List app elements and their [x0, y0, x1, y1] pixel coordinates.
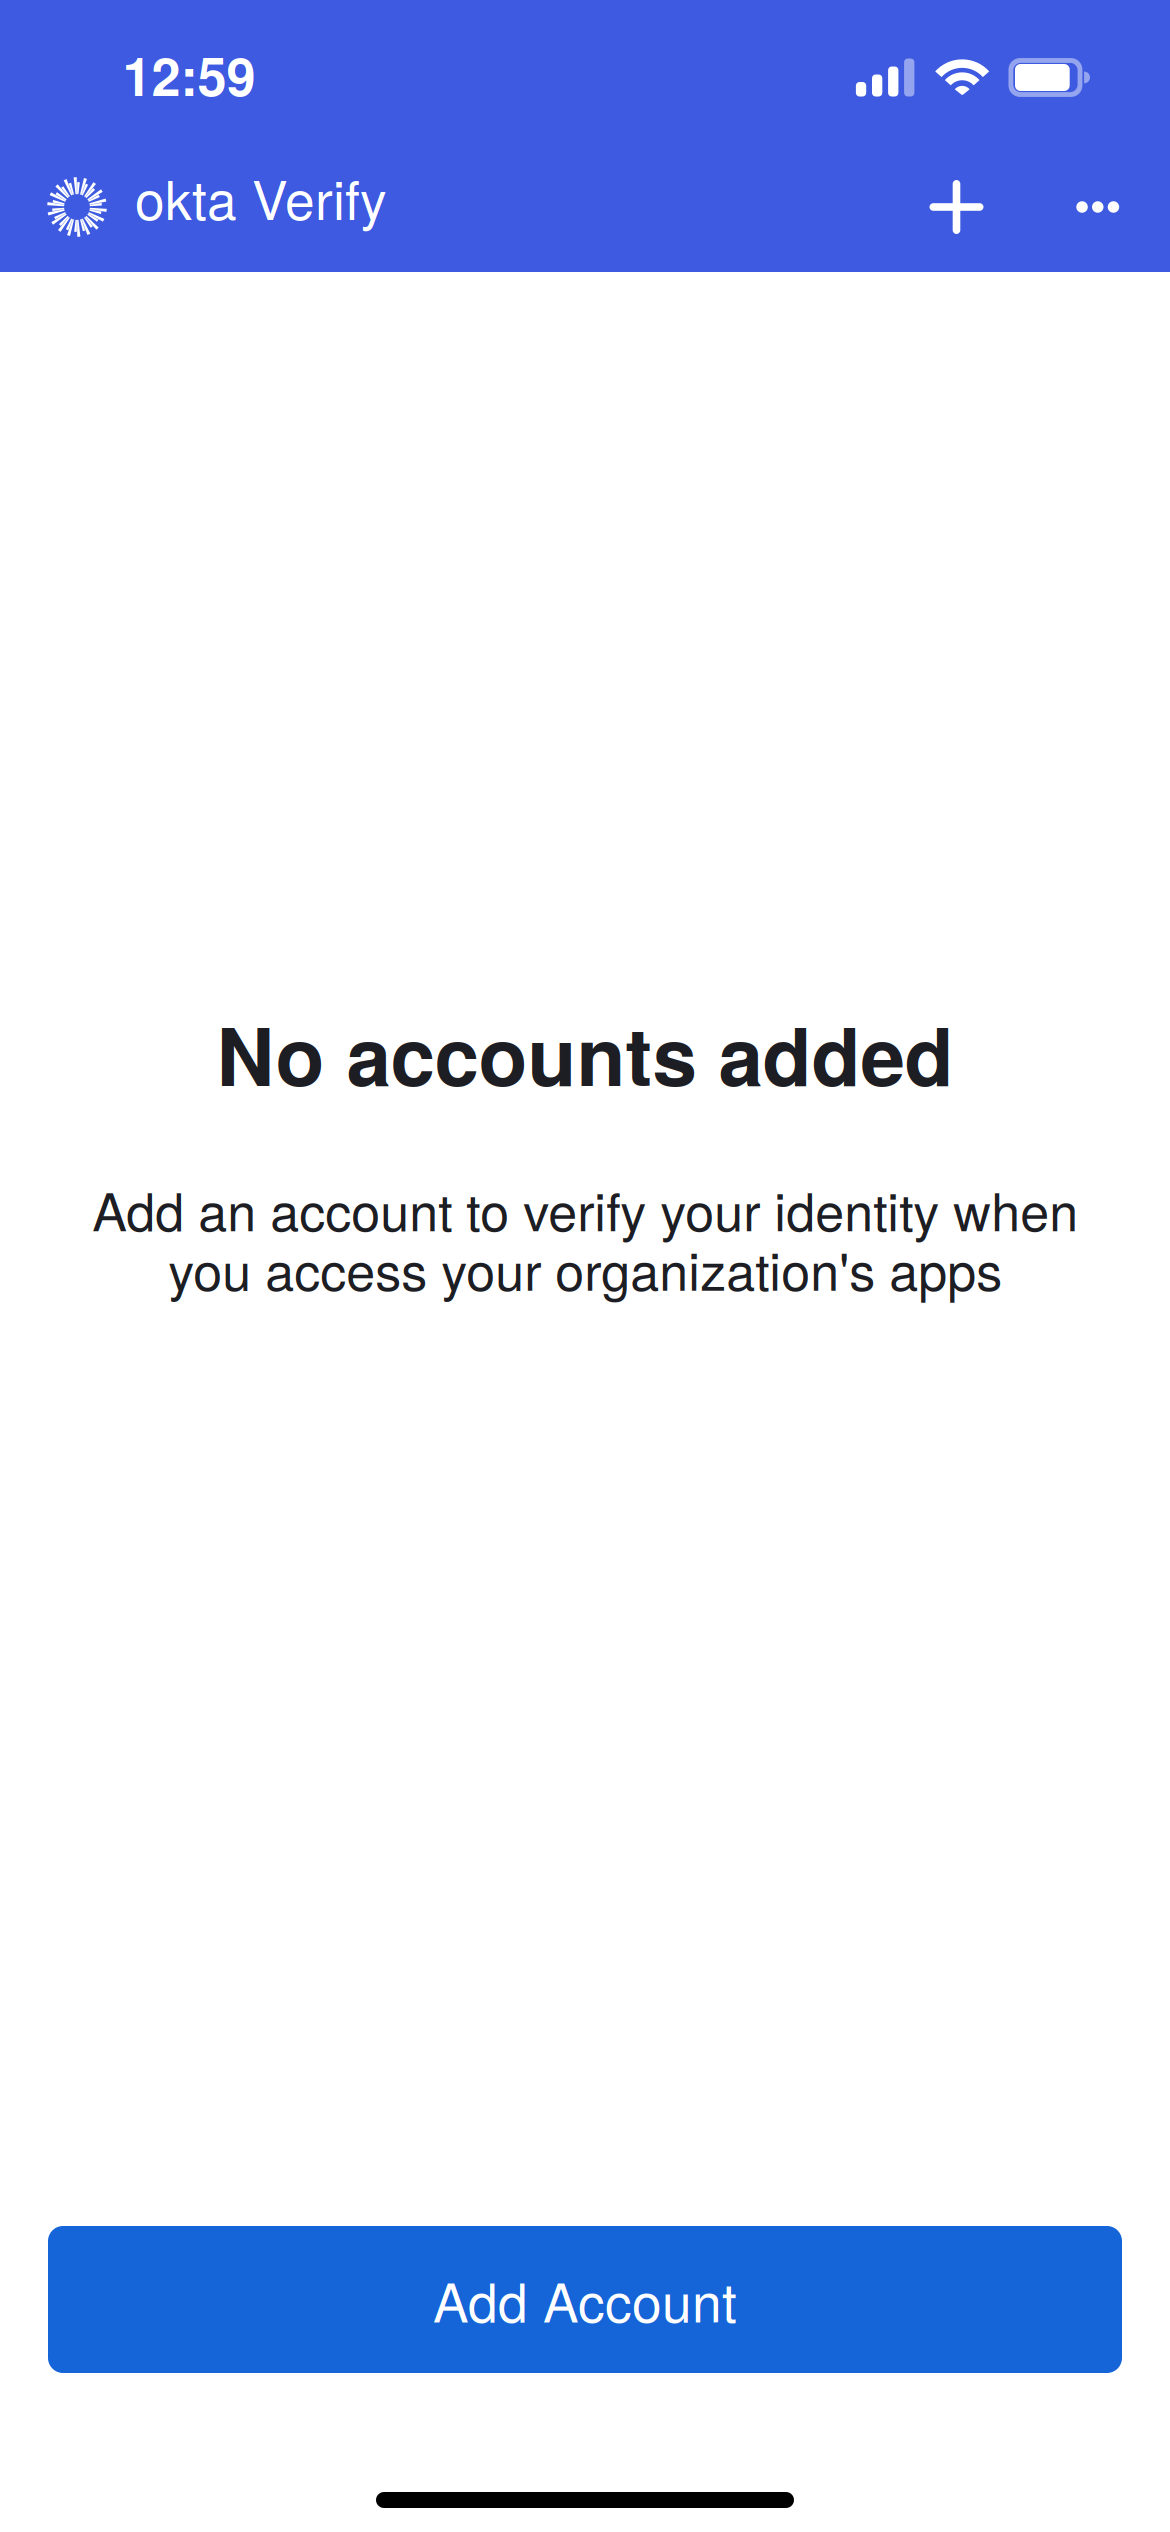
button[interactable]: More options	[1068, 172, 1127, 242]
button[interactable]: Add account	[921, 172, 991, 242]
staticText: Add Account	[433, 2261, 737, 2338]
staticText: 12:59	[122, 37, 255, 112]
staticText: No accounts added	[216, 996, 953, 1111]
staticText: Add an account to verify your identity w…	[92, 1172, 1078, 1305]
button[interactable]: Add Account	[48, 2226, 1122, 2373]
staticText: okta Verify	[135, 159, 387, 235]
